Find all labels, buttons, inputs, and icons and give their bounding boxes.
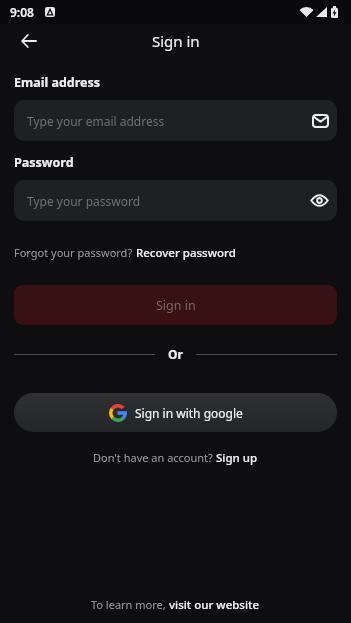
staticText: Email address	[14, 74, 101, 91]
button[interactable]	[0, 24, 58, 58]
button[interactable]: Recover password	[136, 245, 236, 261]
button[interactable]: Sign up	[216, 450, 258, 466]
staticText: To learn more,	[91, 597, 169, 612]
staticText: Sign in with google	[135, 405, 243, 421]
staticText: Type your email address	[27, 113, 165, 129]
staticText: 9:08	[10, 4, 34, 20]
staticText: Forgot your password?	[14, 245, 136, 260]
button[interactable]: Sign in with google	[14, 393, 337, 432]
staticText: Recover password	[136, 245, 236, 261]
staticText: Don't have an account?	[93, 450, 216, 465]
button[interactable]: Type your password	[14, 180, 337, 221]
staticText: Password	[14, 154, 74, 171]
staticText: Sign in	[152, 31, 200, 51]
staticText: Or	[168, 346, 183, 362]
staticText: Sign up	[216, 450, 258, 466]
button[interactable]: visit our website	[169, 597, 260, 613]
staticText: Type your password	[27, 193, 141, 209]
button[interactable]: Type your email address	[14, 100, 337, 141]
button[interactable]: Sign in	[14, 285, 337, 325]
staticText: Sign in	[156, 297, 196, 314]
staticText: visit our website	[169, 597, 260, 613]
